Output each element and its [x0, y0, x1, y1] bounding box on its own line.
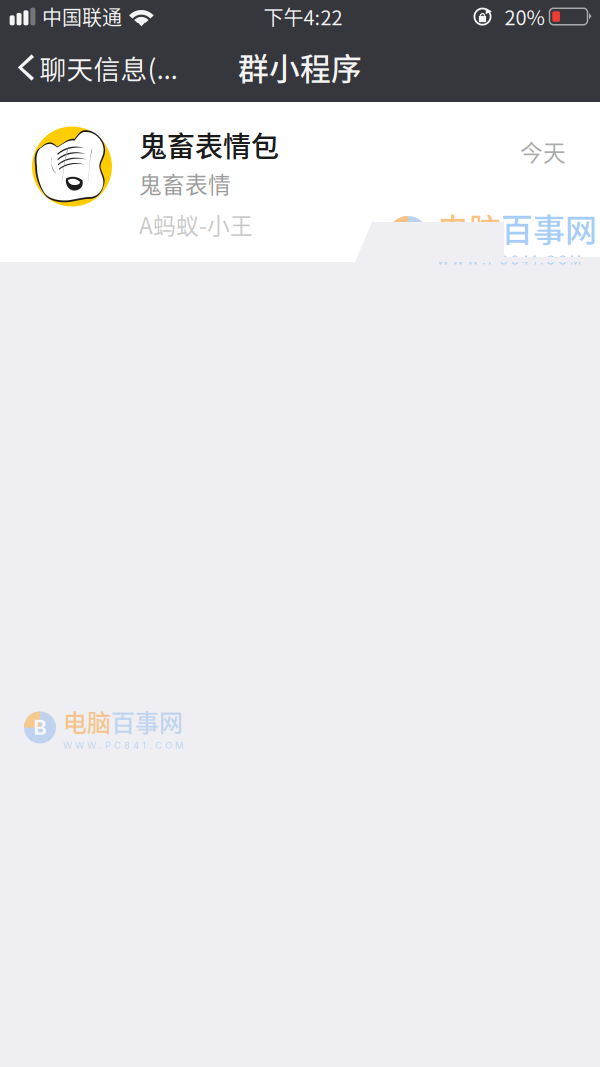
- staticText: 鬼畜表情包: [139, 124, 279, 165]
- staticText: B: [399, 221, 416, 251]
- staticText: W W W . P C 8 4 1 . C O M: [437, 253, 581, 267]
- staticText: 鬼畜表情: [139, 167, 231, 200]
- staticText: 电脑: [63, 704, 111, 739]
- staticText: 中国联通: [42, 2, 122, 31]
- button[interactable]: B: [0, 102, 600, 262]
- button[interactable]: 聊天信息(...: [0, 38, 189, 102]
- staticText: 百事网: [501, 205, 597, 251]
- staticText: 20%: [504, 2, 544, 31]
- staticText: 今天: [520, 135, 566, 168]
- staticText: 下午4:22: [263, 2, 342, 31]
- staticText: 群小程序: [238, 45, 362, 89]
- staticText: 电脑: [437, 205, 501, 251]
- staticText: A蚂蚁-小王: [139, 208, 253, 241]
- staticText: 聊天信息(...: [39, 48, 177, 87]
- staticText: B: [33, 715, 46, 740]
- staticText: W W W . P C 8 4 1 . C O M: [63, 740, 183, 751]
- staticText: 百事网: [111, 704, 183, 739]
